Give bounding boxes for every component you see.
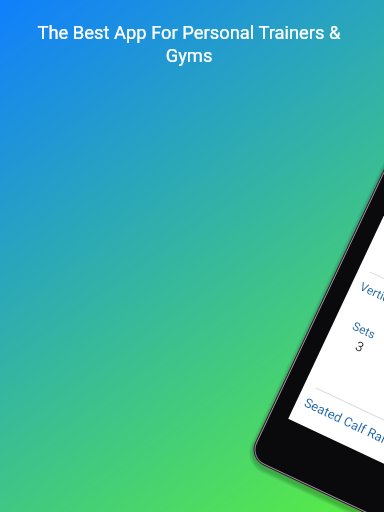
staticText: Sets <box>350 319 378 342</box>
staticText: The Best App For Personal Trainers & Gym… <box>27 22 351 67</box>
staticText: Seated Calf Raise <box>302 395 384 452</box>
staticText: Vertical <box>358 280 384 310</box>
staticText: 3 <box>353 337 367 355</box>
